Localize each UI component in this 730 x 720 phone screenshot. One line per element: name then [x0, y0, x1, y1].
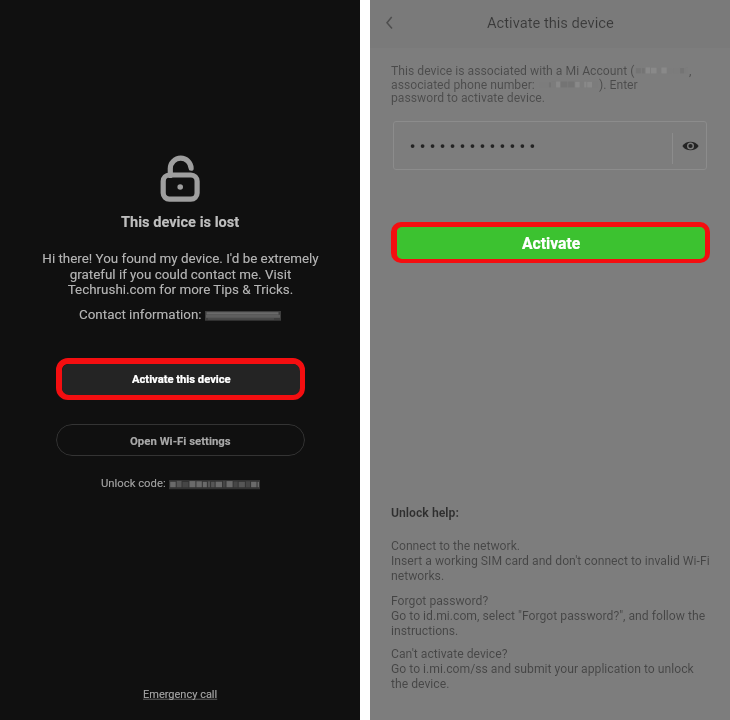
staticText: This device is associated with a Mi Acco…: [391, 64, 635, 78]
staticText: Contact information:: [79, 307, 205, 323]
staticText: Connect to the network. Insert a working…: [391, 539, 710, 583]
staticText: Open Wi-Fi settings: [130, 434, 231, 447]
button[interactable]: Show password: [673, 121, 707, 170]
staticText: This device is lost: [121, 213, 240, 230]
staticText: Unlock help:: [391, 506, 459, 520]
staticText: ,: [689, 64, 692, 78]
staticText: ). Enter: [599, 78, 638, 92]
staticText: Activate: [522, 234, 581, 252]
staticText: password to activate device.: [391, 91, 545, 105]
staticText: associated phone number:: [391, 78, 538, 92]
button[interactable]: Activate this device: [62, 364, 300, 395]
staticText: Activate this device: [487, 14, 614, 31]
button[interactable]: Back: [370, 0, 414, 48]
staticText: Hi there! You found my device. I'd be ex…: [42, 251, 319, 297]
staticText: Activate this device: [132, 373, 231, 386]
staticText: Can't activate device? Go to i.mi.com/ss…: [391, 647, 694, 691]
staticText: Forgot password? Go to id.mi.com, select…: [391, 594, 706, 638]
button[interactable]: Emergency call: [143, 688, 218, 701]
staticText: Unlock code:: [101, 477, 169, 490]
staticText: Emergency call: [143, 688, 218, 701]
button[interactable]: Activate: [397, 227, 705, 259]
button[interactable]: Open Wi-Fi settings: [56, 424, 305, 456]
